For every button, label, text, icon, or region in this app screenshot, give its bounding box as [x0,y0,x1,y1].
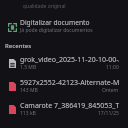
button[interactable]: Digitalizar documento [0,16,128,38]
button[interactable]: qualidade original [0,0,128,12]
staticText: Digitalizar documento [20,18,90,27]
staticText: Camarote 7_386419_845053_Ti… [20,101,119,110]
button[interactable]: 5927x2552-42123-Alternate-Mo… [0,75,128,97]
staticText: 1.5 MB [20,64,37,71]
staticText: qualidade original [23,3,66,10]
staticText: 11:00 [106,64,119,71]
staticText: 17/11/25 [98,110,119,117]
staticText: Ontem [102,87,119,94]
staticText: 113 kB [20,110,36,117]
staticText: 5927x2552-42123-Alternate-Mo… [20,78,119,87]
staticText: Já pode digitalizar documentos [20,27,93,34]
staticText: grok_video_2025-11-20-10-00-A… [20,55,119,64]
other: Digitalizar documento [8,23,17,32]
button[interactable]: Camarote 7_386419_845053_Ti… [0,98,128,120]
staticText: Recentes [5,42,32,50]
button[interactable]: grok_video_2025-11-20-10-00-A… [0,52,128,74]
staticText: 143 MB [20,87,38,94]
